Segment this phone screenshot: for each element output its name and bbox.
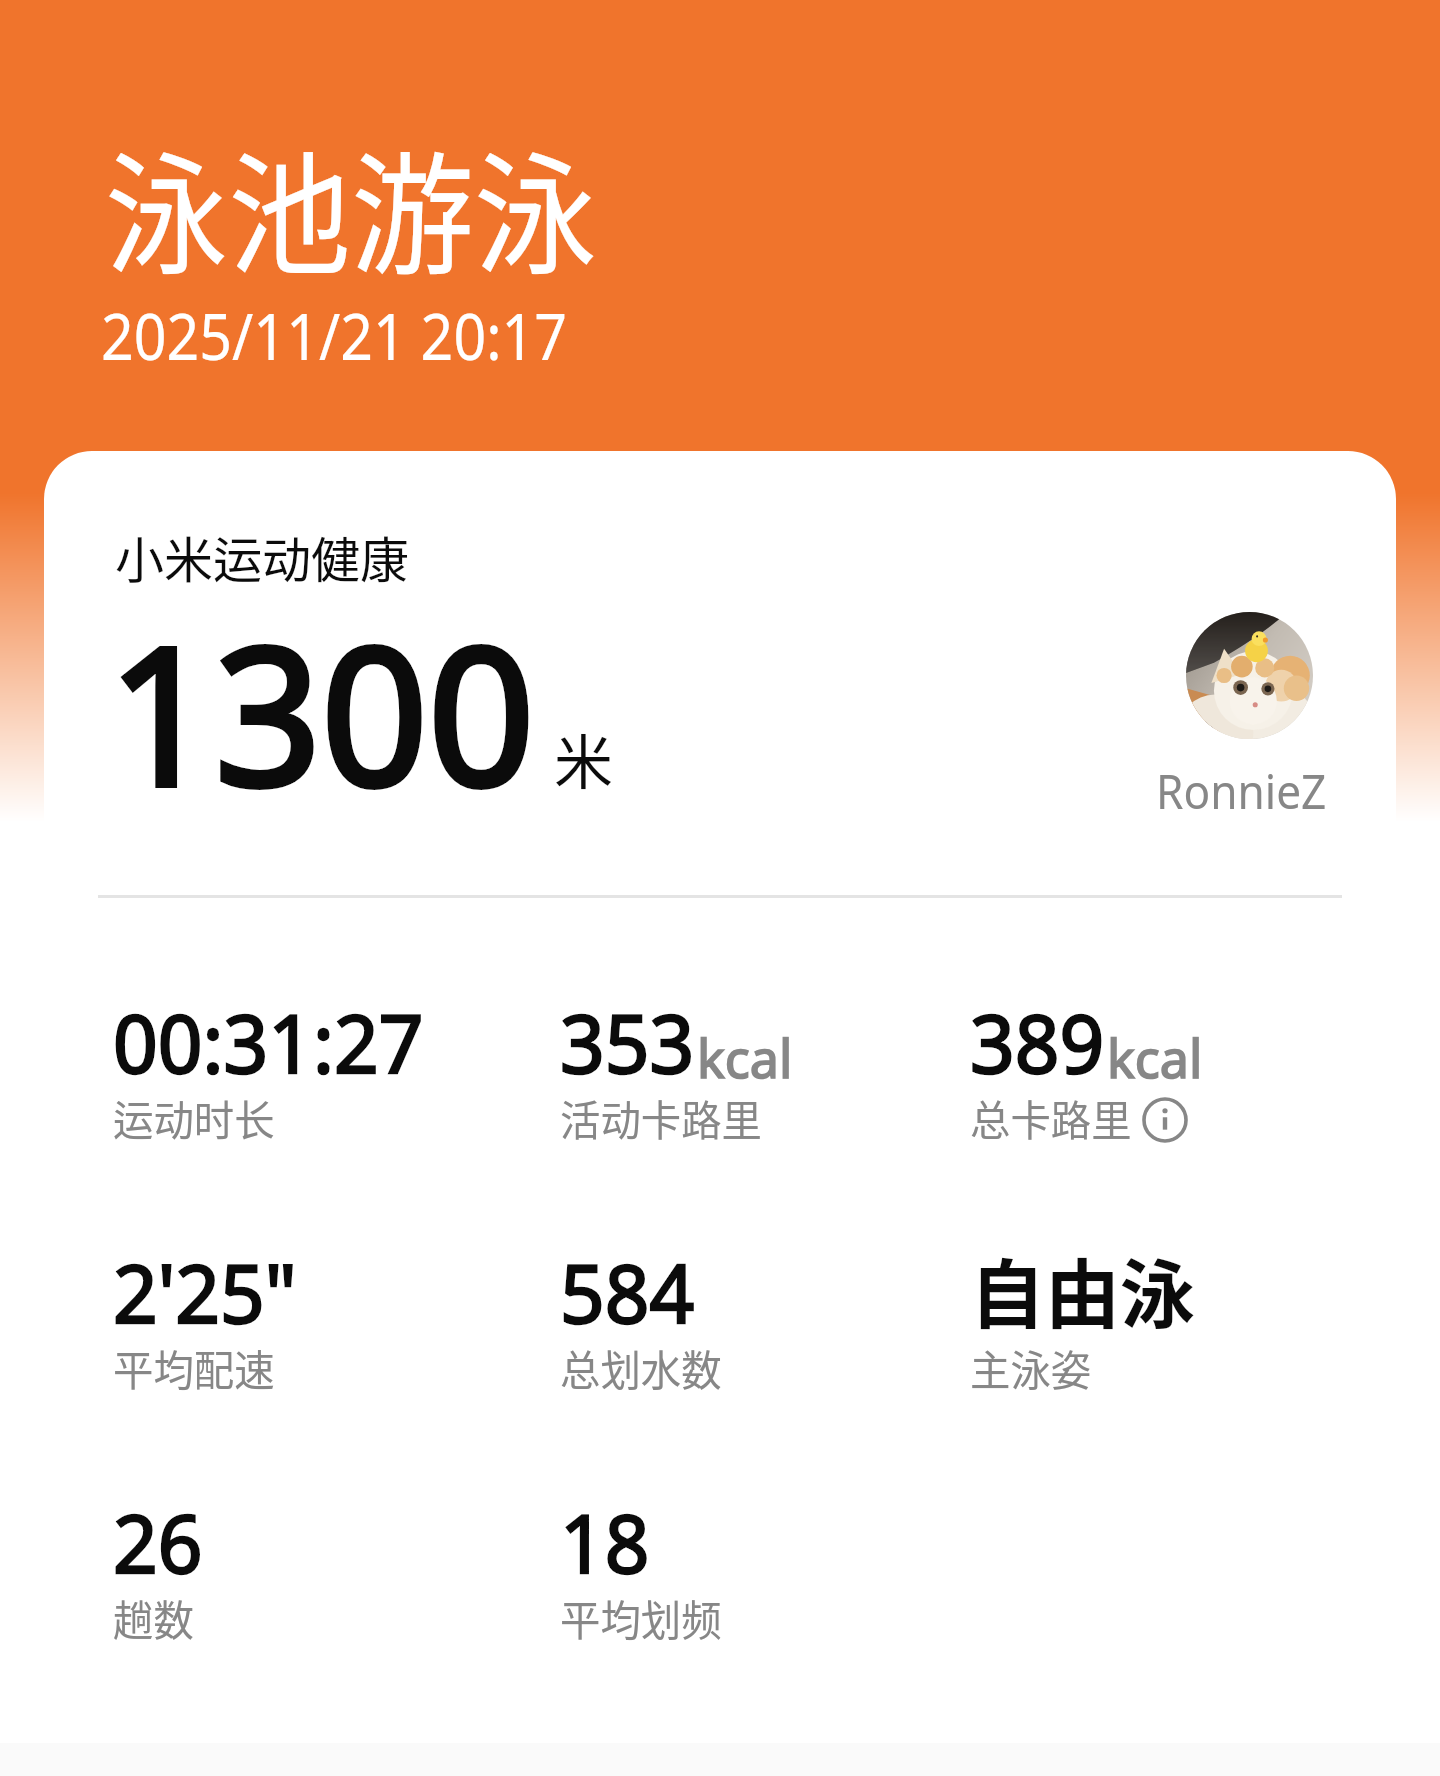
staticText: kcal [1107,1022,1203,1093]
button[interactable]: 26 [113,1513,560,1663]
staticText: 总划水数 [560,1337,723,1398]
staticText: RonnieZ [1156,758,1327,823]
staticText: 1300 [108,581,535,841]
button[interactable]: 00:31:27 [113,1013,560,1163]
staticText: 平均划频 [560,1587,723,1648]
staticText: 2'25" [113,1237,297,1346]
staticText: 运动时长 [113,1087,276,1148]
staticText: 活动卡路里 [560,1087,763,1148]
staticText: kcal [697,1022,793,1093]
staticText: 泳池游泳 [105,110,597,301]
staticText: 自由泳 [970,1235,1196,1344]
button[interactable]: 2'25" [113,1263,560,1413]
staticText: 18 [560,1487,650,1596]
button[interactable]: 自由泳 [970,1263,1370,1413]
staticText: 584 [560,1237,695,1346]
staticText: 389 [970,987,1105,1096]
staticText: 米 [554,716,614,801]
button[interactable]: 小米运动健康 [44,451,1396,871]
staticText: 主泳姿 [970,1337,1092,1398]
staticText: 2025/11/21 20:17 [101,292,567,379]
staticText: 趟数 [113,1587,195,1648]
button[interactable]: Info about total calories [1141,1094,1189,1142]
staticText: 小米运动健康 [115,521,410,592]
staticText: 总卡路里 [970,1087,1133,1148]
staticText: 353 [560,987,695,1096]
button[interactable]: 584 [560,1263,970,1413]
button[interactable]: 389 [970,1013,1370,1163]
staticText: 00:31:27 [113,987,424,1096]
staticText: 平均配速 [113,1337,276,1398]
button[interactable]: 353 [560,1013,970,1163]
button[interactable]: 18 [560,1513,970,1663]
staticText: 26 [113,1487,203,1596]
